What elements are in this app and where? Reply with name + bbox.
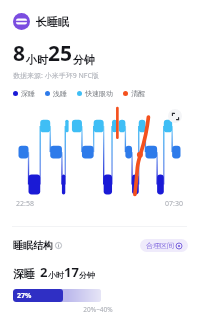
staticText: 22:58 [16,199,34,209]
staticText: 07:30 [165,199,183,209]
staticText: 25 [48,39,73,68]
staticText: 数据来源: 小米手环9 NFC版 [13,71,99,81]
staticText: 2 [40,263,48,281]
staticText: 20%~40% [83,305,113,314]
staticText: 清醒 [131,89,145,98]
button[interactable]: 合理区间 [140,239,188,252]
staticText: 睡眠结构 [13,239,53,252]
staticText: 小时 [26,53,48,67]
staticText: 深睡 [13,267,35,281]
staticText: 17 [64,263,79,281]
staticText: 快速眼动 [85,89,113,98]
button[interactable]: 长睡眠 [0,12,199,31]
staticText: 分钟 [73,53,95,67]
staticText: 合理区间 [146,241,174,250]
button[interactable]: 浅睡 [45,89,67,98]
staticText: 分钟 [79,270,95,280]
staticText: 浅睡 [53,89,67,98]
button[interactable]: 睡眠结构 [13,239,62,252]
staticText: 长睡眠 [36,15,69,29]
button[interactable]: 清醒 [123,89,145,98]
staticText: 8 [13,39,26,68]
button[interactable]: 快速眼动 [77,89,113,98]
button[interactable]: 全屏查看 [168,109,182,123]
staticText: 深睡 [21,89,35,98]
button[interactable]: 深睡 [13,89,35,98]
staticText: 小时 [48,270,64,280]
staticText: 27% [17,291,32,301]
